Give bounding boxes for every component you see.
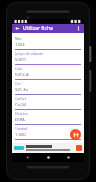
- staticText: ESPA.: [15, 117, 26, 123]
- staticText: Destino: [15, 111, 28, 116]
- staticText: 921-Ex: [15, 87, 29, 93]
- button[interactable]: Destino: [15, 110, 81, 125]
- staticText: 5412-A: [15, 72, 29, 78]
- staticText: Cor: [15, 81, 21, 86]
- staticText: Utilizar ficha: [23, 25, 53, 32]
- button[interactable]: Calibre: [15, 95, 81, 110]
- staticText: Cx-04: [15, 102, 27, 108]
- button[interactable]: More options: [75, 25, 82, 32]
- staticText: Juego de albarán: [15, 51, 44, 56]
- staticText: Lote: [15, 66, 23, 71]
- button[interactable]: Back: [23, 153, 32, 162]
- button[interactable]: Unidad: [15, 125, 81, 140]
- button[interactable]: Nro: [15, 35, 81, 50]
- staticText: 5/201: [15, 57, 27, 63]
- button[interactable]: Save: [70, 129, 81, 140]
- button[interactable]: Juego de albarán: [15, 50, 81, 65]
- button[interactable]: Cor: [15, 80, 81, 95]
- staticText: 1024: [15, 42, 25, 48]
- button[interactable]: Recent apps: [64, 153, 73, 162]
- staticText: Calibre: [15, 96, 27, 101]
- staticText: Unidad: [15, 126, 28, 131]
- button[interactable]: Advertisement icon: [12, 143, 84, 153]
- staticText: 1.000: [15, 132, 26, 138]
- button[interactable]: Back: [14, 25, 21, 32]
- other: Advertisement icon: [76, 145, 82, 151]
- button[interactable]: Home: [44, 153, 53, 162]
- button[interactable]: Lote: [15, 65, 81, 80]
- staticText: Nro: [15, 36, 22, 41]
